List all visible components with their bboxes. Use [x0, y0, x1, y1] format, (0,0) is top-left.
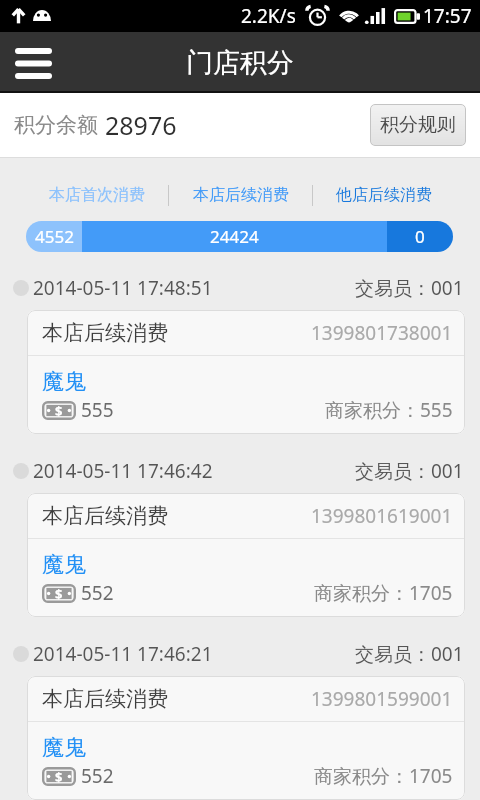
staticText: 552	[81, 580, 114, 606]
staticText: 1399801619001	[311, 503, 453, 529]
staticText: 本店后续消费	[42, 503, 168, 529]
staticText: 1399801738001	[311, 320, 453, 346]
staticText: 商家积分：555	[325, 397, 453, 423]
button[interactable]: 积分规则	[370, 104, 466, 146]
button[interactable]: 本店首次消费	[26, 184, 168, 206]
staticText: 本店后续消费	[193, 185, 289, 205]
staticText: 交易员：001	[355, 641, 464, 667]
staticText: 17:57	[423, 3, 472, 29]
staticText: 1399801599001	[311, 686, 453, 712]
staticText: 魔鬼	[42, 734, 86, 762]
staticText: 本店后续消费	[42, 320, 168, 346]
staticText: $	[55, 585, 63, 603]
staticText: 0	[415, 225, 425, 248]
button[interactable]: 本店后续消费	[27, 310, 465, 434]
staticText: 2014-05-11 17:48:51	[33, 275, 213, 301]
staticText: 552	[81, 763, 114, 789]
staticText: 4552	[35, 225, 74, 248]
staticText: 2014-05-11 17:46:21	[33, 641, 213, 667]
button[interactable]: 本店后续消费	[169, 184, 312, 206]
staticText: 商家积分：1705	[314, 763, 453, 789]
staticText: 2014-05-11 17:46:42	[33, 458, 213, 484]
staticText: 555	[81, 397, 114, 423]
staticText: 本店后续消费	[42, 686, 168, 712]
staticText: 积分规则	[380, 113, 456, 137]
staticText: 他店后续消费	[336, 185, 432, 205]
button[interactable]: Menu	[5, 35, 61, 91]
staticText: $	[55, 768, 63, 786]
staticText: 交易员：001	[355, 275, 464, 301]
staticText: $	[55, 402, 63, 420]
staticText: 24424	[210, 225, 259, 248]
staticText: 商家积分：1705	[314, 580, 453, 606]
button[interactable]: 本店后续消费	[27, 676, 465, 800]
staticText: 2.2K/s	[241, 3, 296, 29]
staticText: 积分余额	[14, 112, 98, 138]
staticText: 本店首次消费	[49, 185, 145, 205]
staticText: 28976	[105, 108, 177, 142]
staticText: 魔鬼	[42, 368, 86, 396]
staticText: 门店积分	[186, 46, 294, 80]
staticText: 魔鬼	[42, 551, 86, 579]
button[interactable]: 他店后续消费	[313, 184, 455, 206]
button[interactable]: 本店后续消费	[27, 493, 465, 617]
staticText: 交易员：001	[355, 458, 464, 484]
